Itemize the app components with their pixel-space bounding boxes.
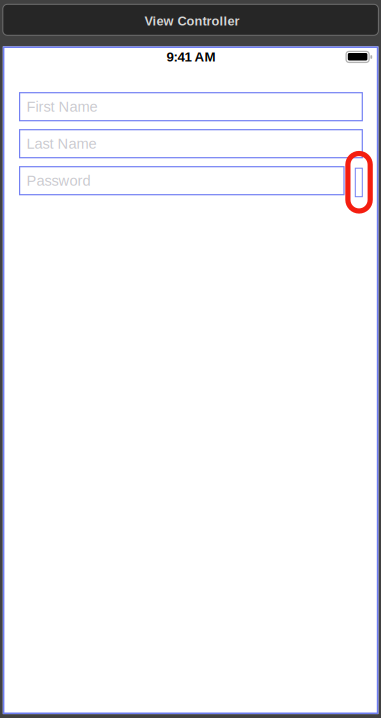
staticText: Last Name [26,135,96,152]
staticText: First Name [26,98,97,115]
staticText: View Controller [144,14,239,28]
staticText: Password [26,172,90,189]
staticText: 9:41 AM [167,50,216,64]
button[interactable]: Last Name [20,130,362,158]
button[interactable]: View Controller [3,4,378,35]
button[interactable]: First Name [20,93,362,121]
button[interactable]: Password [20,167,344,195]
button[interactable]: Show password [355,168,362,197]
